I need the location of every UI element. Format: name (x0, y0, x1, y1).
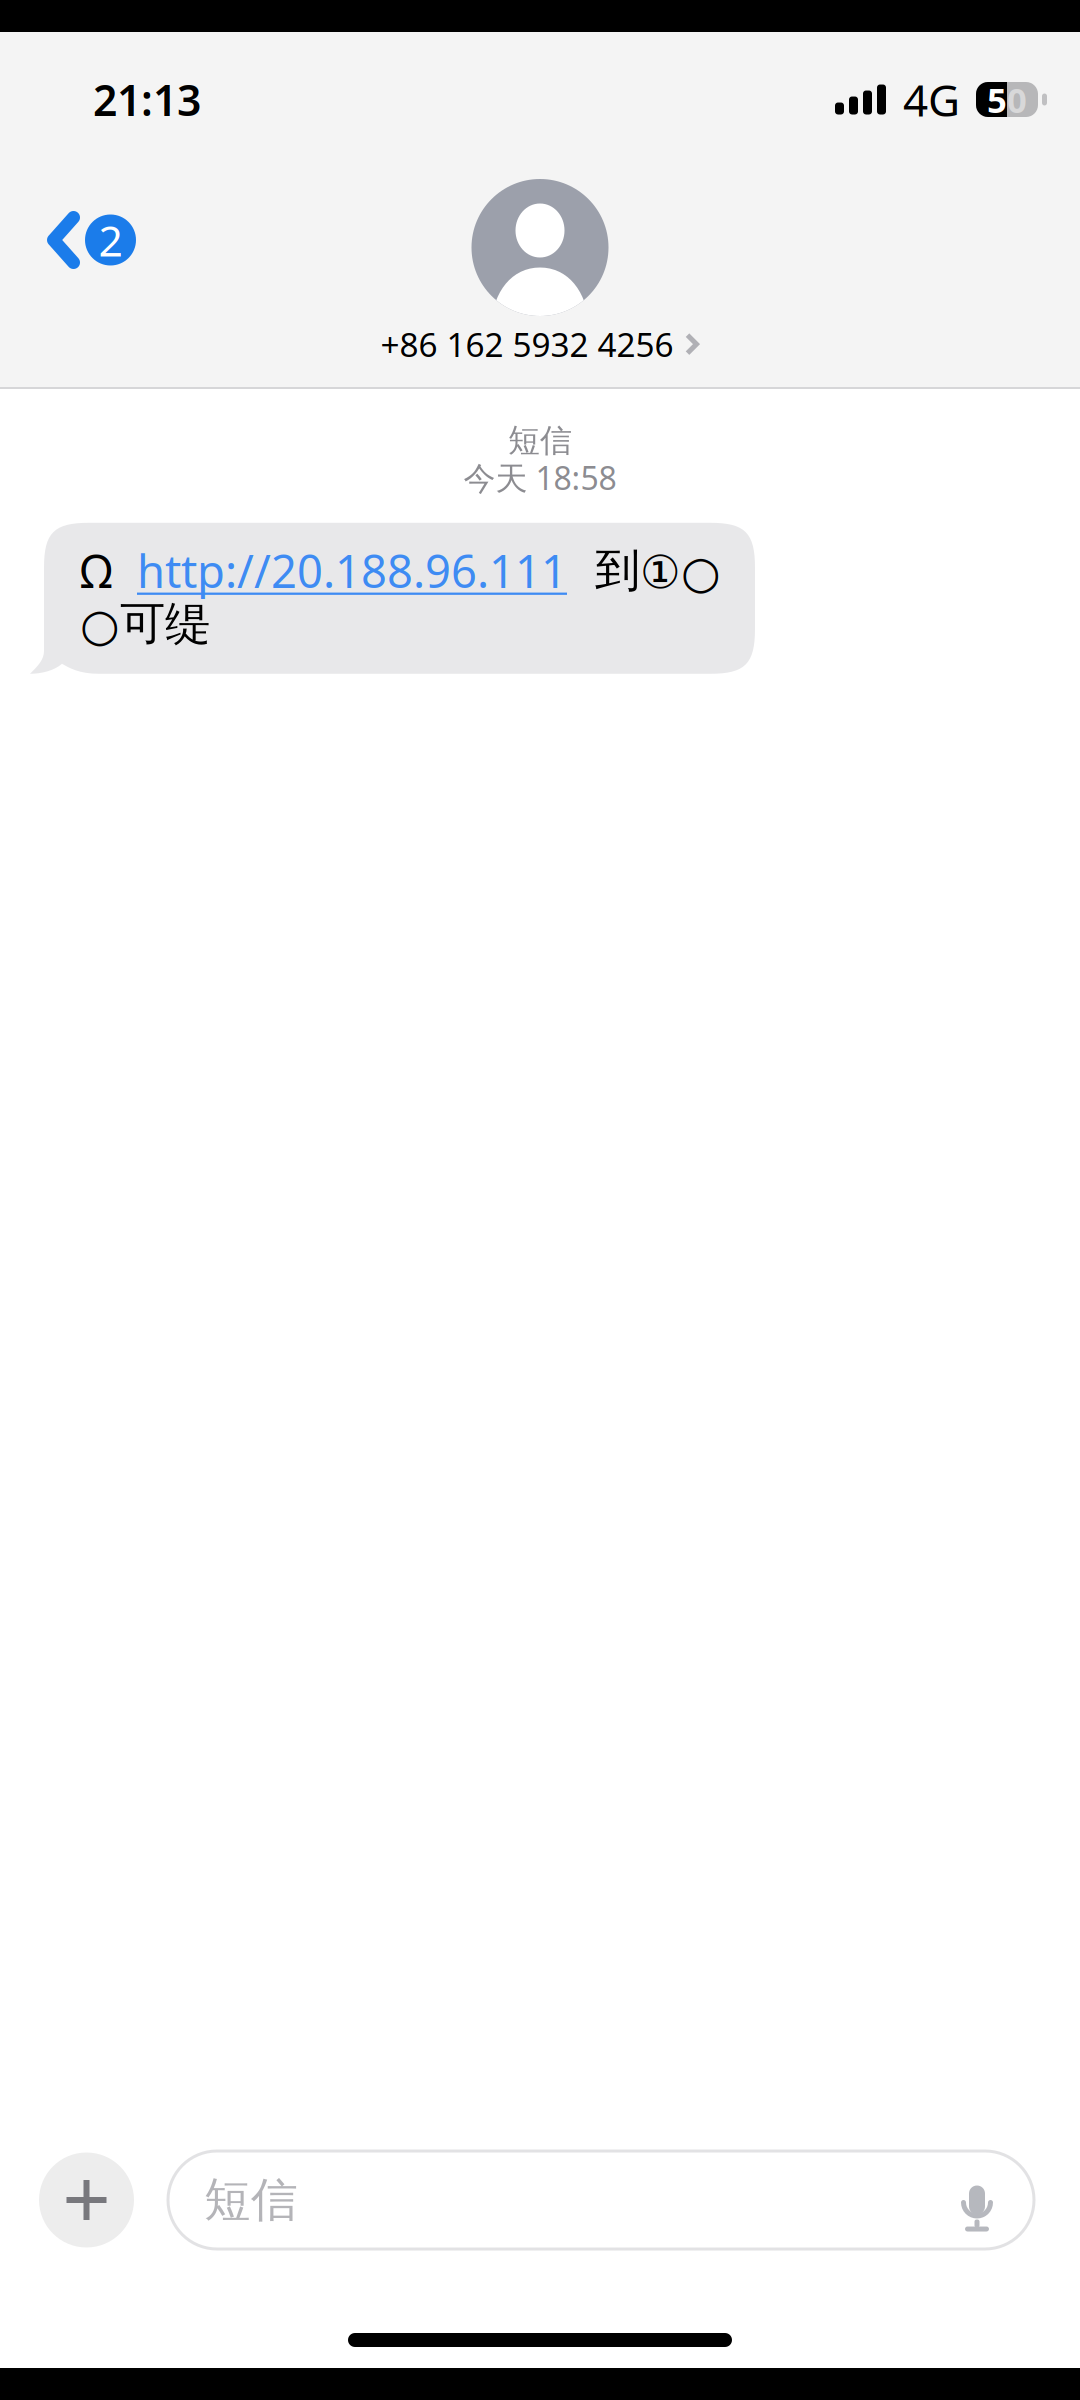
staticText: 短信 (508, 421, 572, 460)
button[interactable]: Contact details (360, 167, 719, 387)
staticText: 4G (903, 70, 960, 129)
staticText: ○可缇 (80, 596, 210, 651)
staticText: 到①○ (567, 543, 721, 598)
button[interactable]: Back, 2 unread conversations (0, 167, 158, 291)
staticText: 21:13 (93, 71, 201, 128)
button[interactable]: Add attachment (39, 2152, 134, 2247)
button[interactable]: Text message field (168, 2151, 1034, 2249)
staticText: 50 (987, 76, 1027, 122)
staticText: 今天 18:58 (463, 456, 616, 499)
staticText: 短信 (204, 2171, 298, 2229)
staticText: http://20.188.96.111 (137, 540, 567, 601)
staticText: 2 (98, 212, 122, 268)
staticText: Ω (80, 540, 137, 601)
staticText: +86 162 5932 4256 (380, 322, 673, 366)
staticText: 50 (987, 76, 1027, 122)
